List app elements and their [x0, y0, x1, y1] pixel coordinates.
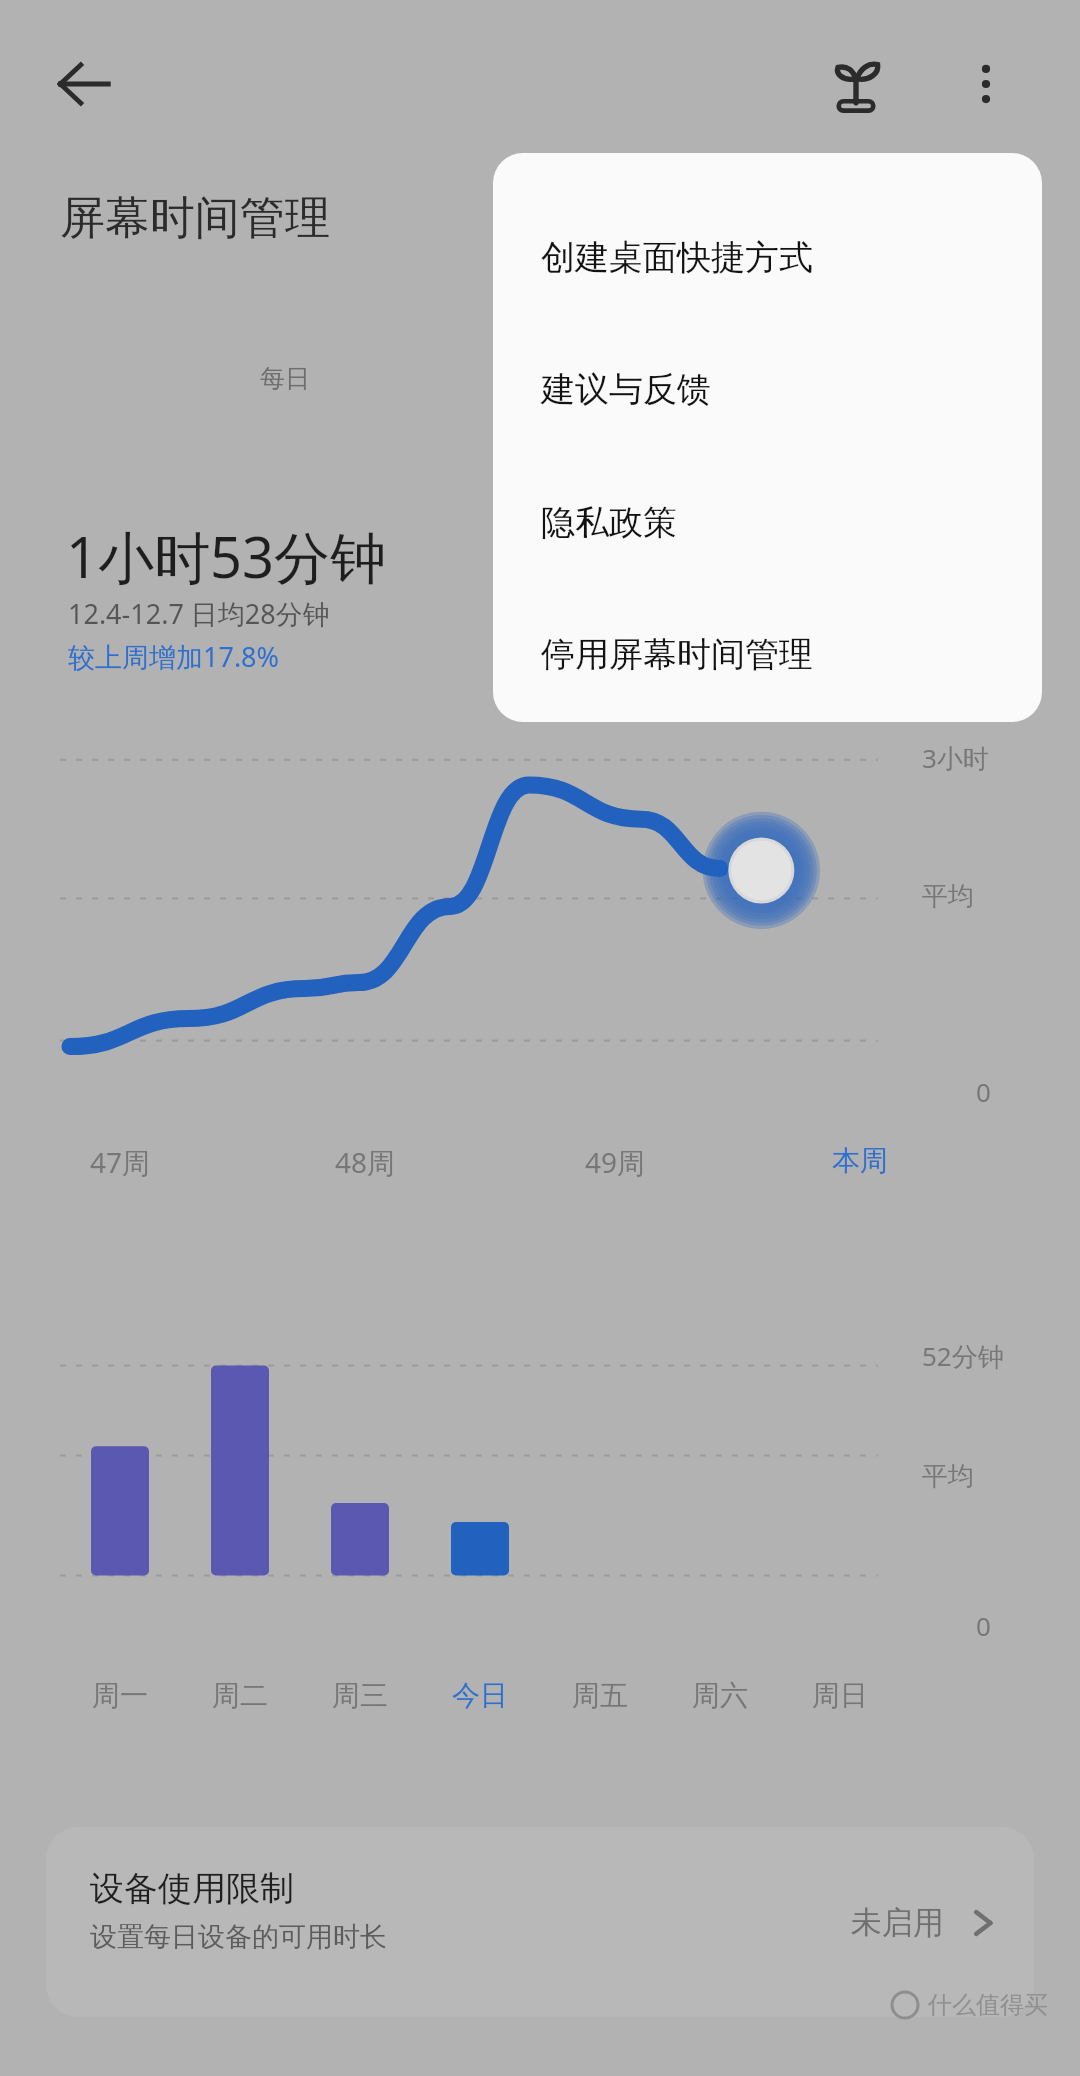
- button[interactable]: 今日: [432, 1678, 528, 1713]
- staticText: 设置每日设备的可用时长: [90, 1920, 387, 1954]
- staticText: 建议与反馈: [541, 368, 711, 411]
- button[interactable]: 设备使用限制: [46, 1827, 1034, 2017]
- button[interactable]: 周五: [552, 1678, 648, 1713]
- staticText: 周三: [312, 1678, 408, 1713]
- staticText: 创建桌面快捷方式: [541, 236, 813, 279]
- button[interactable]: 48周: [323, 1143, 407, 1181]
- button[interactable]: 建议与反馈: [493, 335, 1042, 443]
- staticText: 本周: [818, 1143, 902, 1178]
- staticText: 停用屏幕时间管理: [541, 633, 813, 676]
- staticText: 隐私政策: [541, 501, 677, 544]
- staticText: 12.4-12.7 日均28分钟: [68, 595, 330, 632]
- button[interactable]: More options: [950, 48, 1022, 120]
- staticText: 每日: [260, 363, 310, 394]
- button[interactable]: 周六: [672, 1678, 768, 1713]
- staticText: 平均: [922, 1460, 974, 1493]
- staticText: 52分钟: [922, 1338, 1004, 1374]
- button[interactable]: 49周: [573, 1143, 657, 1181]
- staticText: 周六: [672, 1678, 768, 1713]
- button[interactable]: 本周: [818, 1143, 902, 1178]
- button[interactable]: 隐私政策: [493, 468, 1042, 576]
- staticText: 较上周增加17.8%: [68, 638, 280, 675]
- button[interactable]: 周一: [72, 1678, 168, 1713]
- staticText: 设备使用限制: [90, 1867, 294, 1910]
- staticText: 47周: [78, 1143, 162, 1181]
- button[interactable]: Back: [52, 52, 116, 116]
- staticText: 什么值得买: [928, 1990, 1048, 2020]
- button[interactable]: 47周: [78, 1143, 162, 1181]
- staticText: 平均: [922, 880, 974, 913]
- button[interactable]: 停用屏幕时间管理: [493, 600, 1042, 708]
- button[interactable]: 周日: [792, 1678, 888, 1713]
- staticText: 周二: [192, 1678, 288, 1713]
- staticText: 1小时53分钟: [66, 518, 387, 594]
- staticText: 今日: [432, 1678, 528, 1713]
- staticText: 48周: [323, 1143, 407, 1181]
- staticText: 未启用: [851, 1903, 944, 1942]
- staticText: 周一: [72, 1678, 168, 1713]
- button[interactable]: 创建桌面快捷方式: [493, 203, 1042, 311]
- staticText: 屏幕时间管理: [60, 190, 330, 247]
- button[interactable]: 周二: [192, 1678, 288, 1713]
- staticText: 周五: [552, 1678, 648, 1713]
- staticText: 0: [976, 1074, 991, 1109]
- staticText: 周日: [792, 1678, 888, 1713]
- staticText: 0: [976, 1608, 991, 1643]
- staticText: 49周: [573, 1143, 657, 1181]
- button[interactable]: 周三: [312, 1678, 408, 1713]
- staticText: 3小时: [922, 740, 989, 776]
- button[interactable]: Focus mode: [820, 48, 892, 120]
